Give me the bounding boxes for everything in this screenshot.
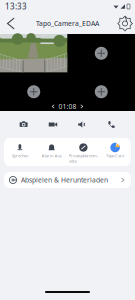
button[interactable]: Tapo Care [99, 138, 131, 166]
staticText: Privatsphärenmodus [69, 153, 98, 164]
button[interactable]: Record [38, 120, 67, 129]
button[interactable]: Abspielen & Herunterladen [4, 172, 131, 188]
button[interactable]: Snapshot [9, 120, 38, 129]
button[interactable]: Alarm Aus [36, 138, 68, 166]
button[interactable]: Sprechen [4, 138, 36, 166]
staticText: Sprechen [12, 153, 28, 158]
button[interactable]: Privatsphärenmodus [67, 138, 99, 166]
staticText: Alarm Aus [42, 153, 62, 158]
button[interactable]: Add camera [95, 47, 108, 60]
staticText: Abspielen & Herunterladen [21, 176, 108, 184]
staticText: 13:33 [5, 1, 27, 12]
button[interactable]: Settings [117, 15, 133, 31]
button[interactable]: Back [2, 15, 18, 31]
button[interactable]: Add camera [95, 85, 108, 98]
button[interactable]: Sound [67, 120, 97, 129]
button[interactable]: Add camera [27, 85, 40, 98]
button[interactable]: Call [97, 120, 126, 129]
staticText: Tapo_Camera_EDAA [36, 19, 99, 28]
staticText: 01:08 [58, 102, 76, 111]
staticText: Tapo Care [106, 153, 124, 158]
